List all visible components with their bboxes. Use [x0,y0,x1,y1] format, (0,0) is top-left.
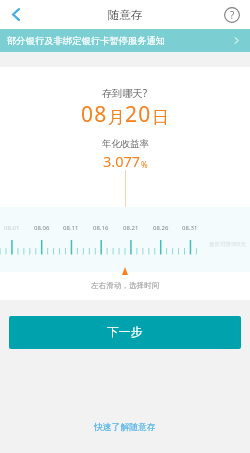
staticText: 快速了解随意存 [94,422,156,433]
staticText: % [141,159,148,170]
staticText: 3.077 [103,151,141,171]
staticText: 08.31 [182,224,198,232]
staticText: 存到哪天? [102,86,148,100]
staticText: 日 [152,107,169,128]
staticText: 随意存 [108,8,143,22]
staticText: 下一步 [107,325,143,340]
button[interactable]: 下一步 [9,316,241,349]
staticText: ? [230,8,235,22]
button[interactable]: Help [214,0,250,29]
staticText: 08.01 [4,224,20,232]
staticText: 08 [81,100,108,129]
staticText: 部分银行及非绑定银行卡暂停服务通知 [7,35,166,47]
staticText: 月 [108,107,125,128]
staticText: 08.21 [123,224,139,232]
button[interactable]: 08.01 [0,207,250,272]
staticText: 20 [125,100,152,129]
button[interactable]: Back [0,0,31,29]
button[interactable]: 快速了解随意存 [80,417,170,438]
button[interactable]: 部分银行及非绑定银行卡暂停服务通知 [0,29,250,52]
staticText: 左右滑动，选择时间 [91,281,160,291]
staticText: 08.06 [34,224,50,232]
staticText: 最长可存365天 [209,240,246,248]
staticText: 年化收益率 [102,138,149,150]
staticText: 08.11 [63,224,79,232]
staticText: 08.26 [153,224,169,232]
staticText: 08.16 [93,224,109,232]
